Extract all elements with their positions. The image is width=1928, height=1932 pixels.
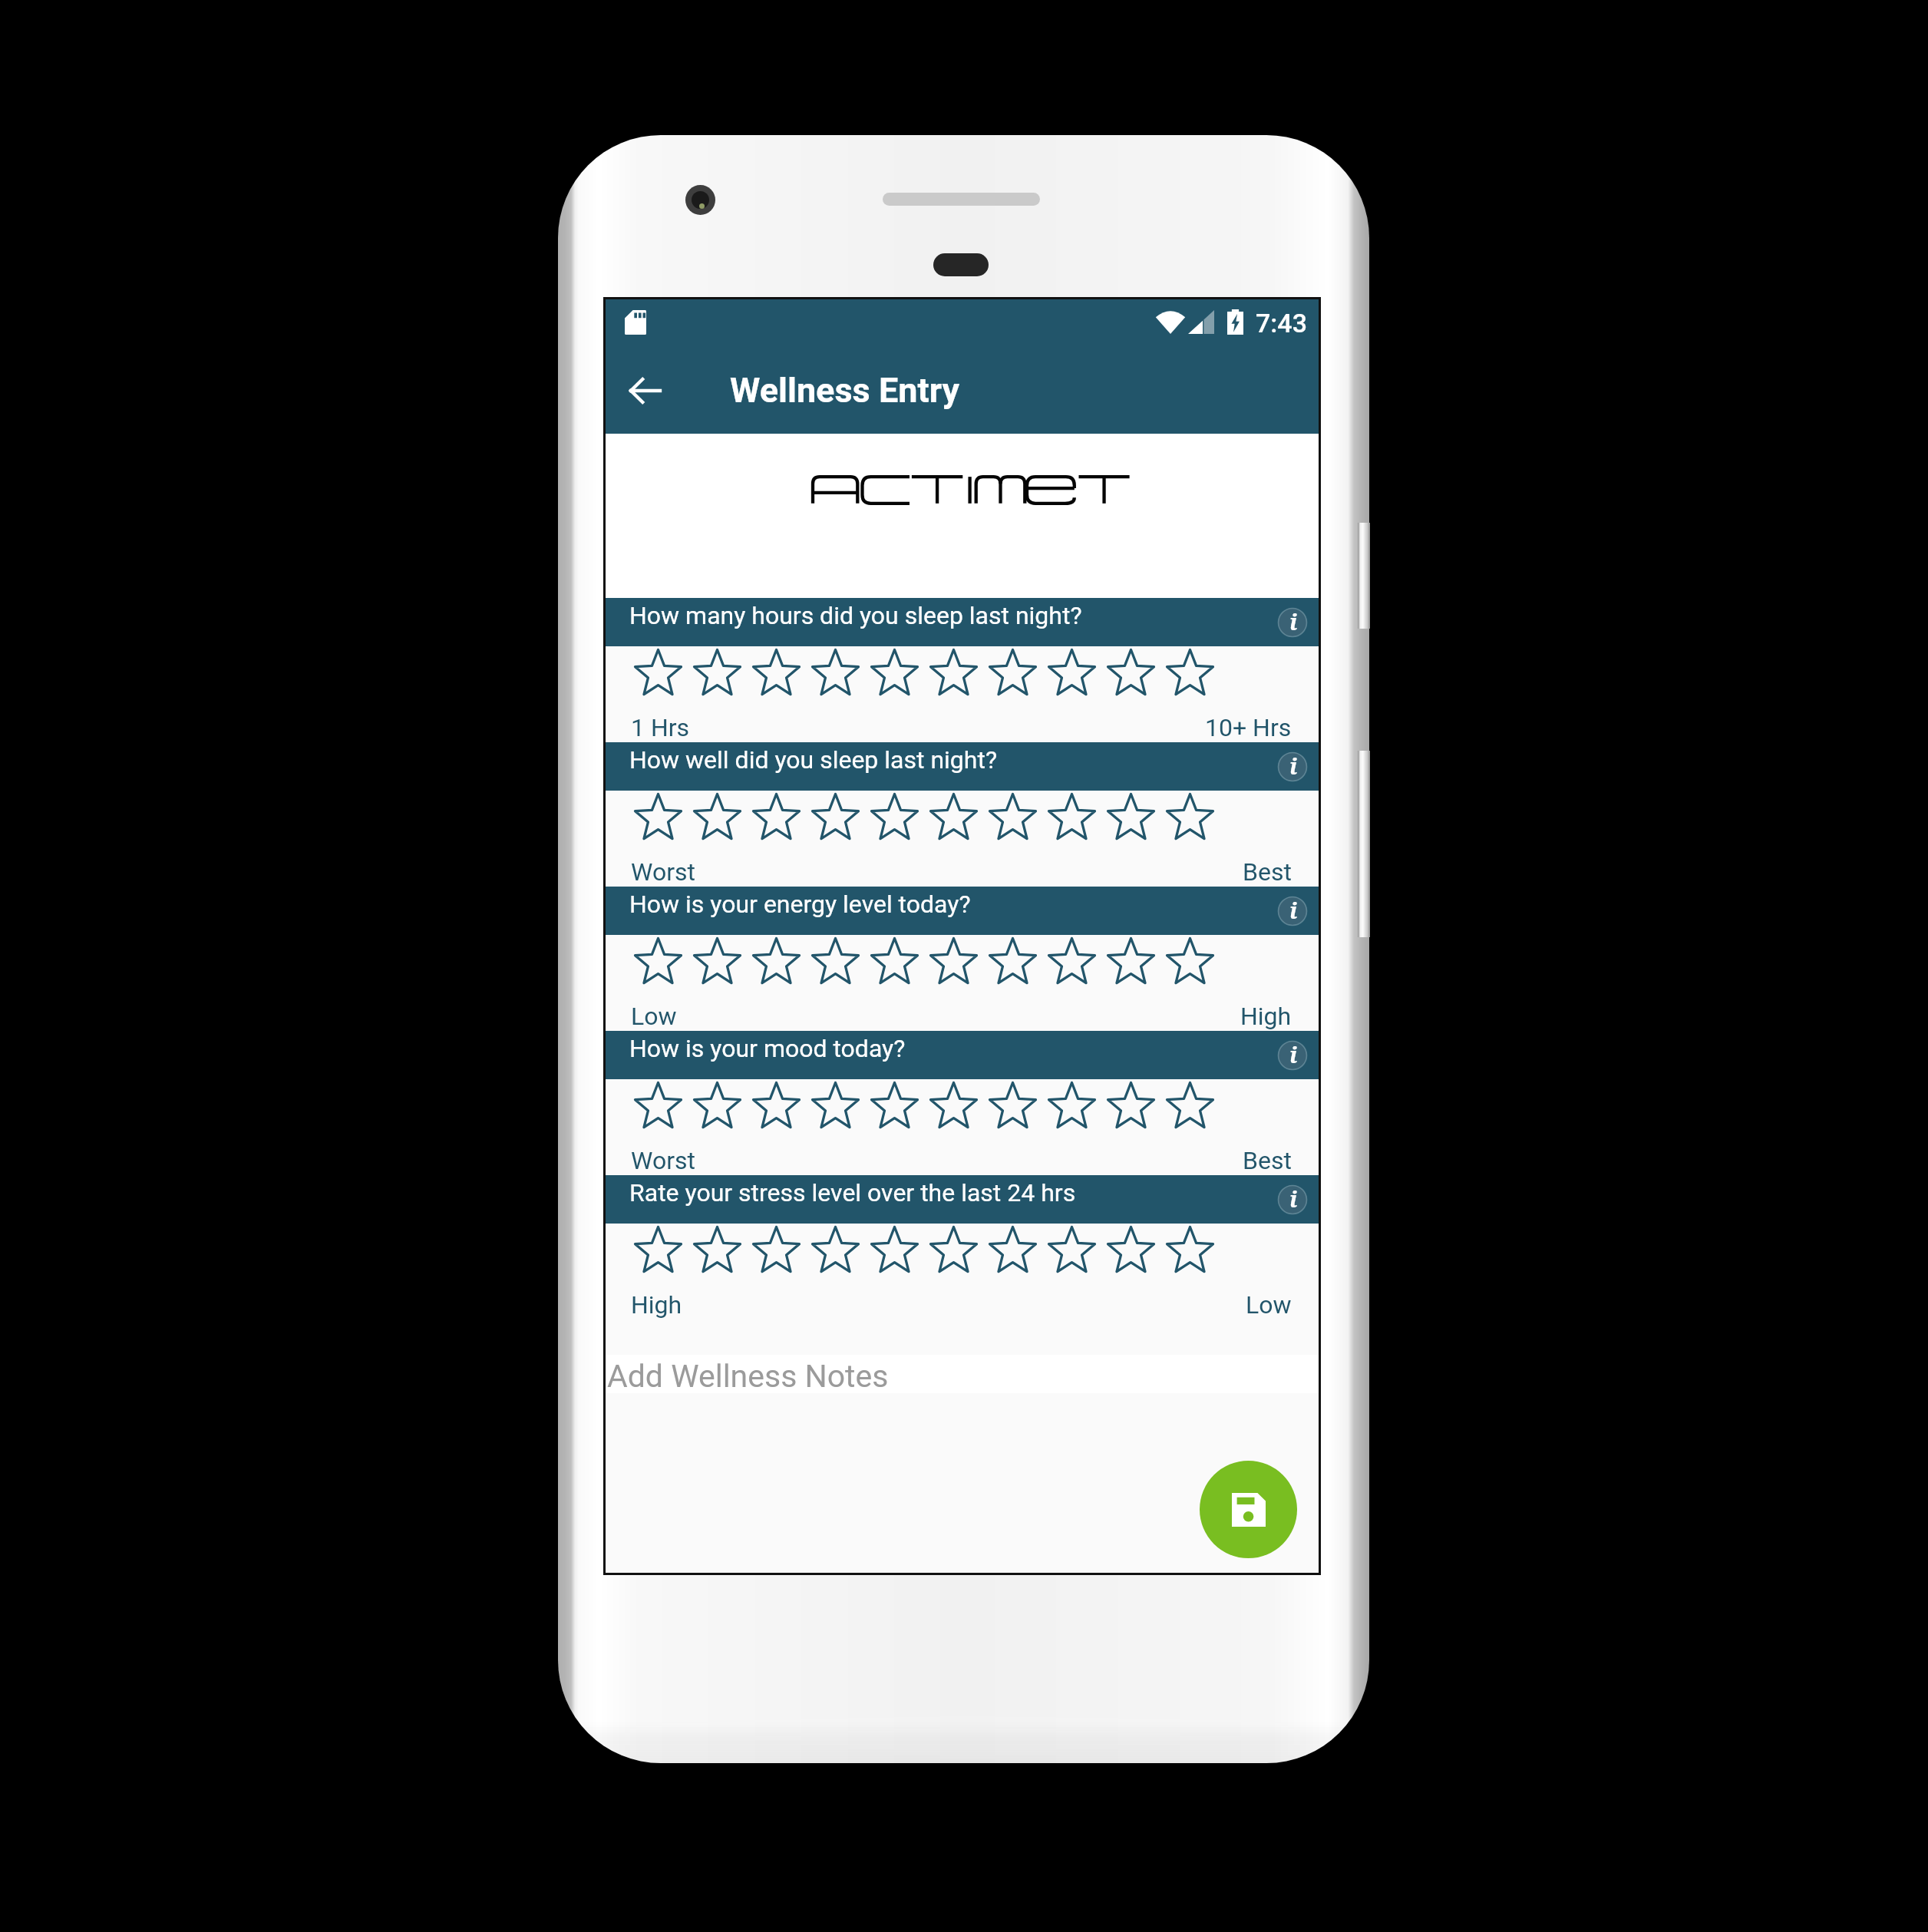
button[interactable]: How is your energy level today? [606, 887, 1319, 935]
button[interactable] [693, 1227, 752, 1272]
button[interactable] [693, 939, 752, 983]
button[interactable] [870, 1083, 929, 1128]
button[interactable] [634, 939, 693, 983]
button[interactable] [752, 794, 811, 839]
button[interactable] [1107, 650, 1166, 695]
button[interactable] [989, 650, 1048, 695]
button[interactable] [1107, 794, 1166, 839]
button[interactable] [1048, 650, 1107, 695]
button[interactable] [693, 794, 752, 839]
staticText: i [1289, 606, 1298, 636]
button[interactable]: How is your mood today? [606, 1031, 1319, 1079]
button[interactable] [989, 794, 1048, 839]
button[interactable] [929, 939, 989, 983]
staticText: How is your energy level today? [629, 890, 971, 919]
button[interactable] [752, 939, 811, 983]
button[interactable] [811, 794, 870, 839]
button[interactable] [1048, 794, 1107, 839]
button[interactable] [929, 1227, 989, 1272]
staticText: Low [1246, 1290, 1292, 1319]
button[interactable] [693, 650, 752, 695]
button[interactable]: How well did you sleep last night? [606, 742, 1319, 791]
button[interactable] [693, 1083, 752, 1128]
button[interactable] [634, 650, 693, 695]
button[interactable]: Back [622, 368, 667, 413]
button[interactable] [989, 1083, 1048, 1128]
staticText: 10+ Hrs [1205, 713, 1292, 742]
button[interactable] [1048, 1083, 1107, 1128]
button[interactable] [1048, 939, 1107, 983]
staticText: How many hours did you sleep last night? [629, 601, 1082, 630]
staticText: i [1289, 895, 1298, 925]
staticText: i [1289, 751, 1298, 781]
button[interactable]: Info [1277, 1040, 1308, 1071]
staticText: i [1289, 1184, 1298, 1214]
staticText: i [1289, 1039, 1298, 1069]
staticText: How well did you sleep last night? [629, 745, 998, 774]
button[interactable]: Info [1277, 751, 1308, 782]
button[interactable] [929, 1083, 989, 1128]
button[interactable] [1107, 939, 1166, 983]
button[interactable] [870, 794, 929, 839]
staticText: 1 Hrs [631, 713, 690, 742]
button[interactable] [1166, 794, 1225, 839]
button[interactable] [989, 939, 1048, 983]
staticText: Rate your stress level over the last 24 … [629, 1178, 1076, 1207]
button[interactable] [870, 650, 929, 695]
staticText: How is your mood today? [629, 1034, 906, 1063]
staticText: High [1240, 1002, 1292, 1031]
staticText: High [631, 1290, 682, 1319]
button[interactable]: Info [1277, 607, 1308, 638]
button[interactable] [1166, 939, 1225, 983]
button[interactable] [752, 1227, 811, 1272]
button[interactable] [634, 794, 693, 839]
button[interactable] [811, 1083, 870, 1128]
button[interactable] [1166, 1227, 1225, 1272]
button[interactable]: Add Wellness Notes [606, 1355, 1319, 1393]
button[interactable] [870, 1227, 929, 1272]
staticText: Low [631, 1002, 677, 1031]
button[interactable] [989, 1227, 1048, 1272]
button[interactable]: Save [1200, 1461, 1297, 1558]
button[interactable] [1107, 1227, 1166, 1272]
button[interactable] [752, 1083, 811, 1128]
button[interactable] [811, 1227, 870, 1272]
button[interactable]: Info [1277, 1184, 1308, 1215]
button[interactable] [870, 939, 929, 983]
button[interactable] [634, 1227, 693, 1272]
button[interactable]: How many hours did you sleep last night? [606, 598, 1319, 646]
staticText: Worst [631, 1146, 695, 1175]
button[interactable] [1166, 650, 1225, 695]
button[interactable] [811, 650, 870, 695]
staticText: Best [1243, 857, 1292, 887]
staticText: Best [1243, 1146, 1292, 1175]
staticText: Worst [631, 857, 695, 887]
staticText: Add Wellness Notes [607, 1358, 889, 1395]
button[interactable]: Info [1277, 896, 1308, 926]
button[interactable] [752, 650, 811, 695]
button[interactable] [1166, 1083, 1225, 1128]
button[interactable] [1048, 1227, 1107, 1272]
button[interactable] [811, 939, 870, 983]
button[interactable] [929, 650, 989, 695]
button[interactable] [634, 1083, 693, 1128]
button[interactable] [1107, 1083, 1166, 1128]
staticText: 7:43 [1256, 308, 1307, 339]
button[interactable]: Rate your stress level over the last 24 … [606, 1175, 1319, 1224]
staticText: Wellness Entry [730, 370, 960, 411]
button[interactable] [929, 794, 989, 839]
